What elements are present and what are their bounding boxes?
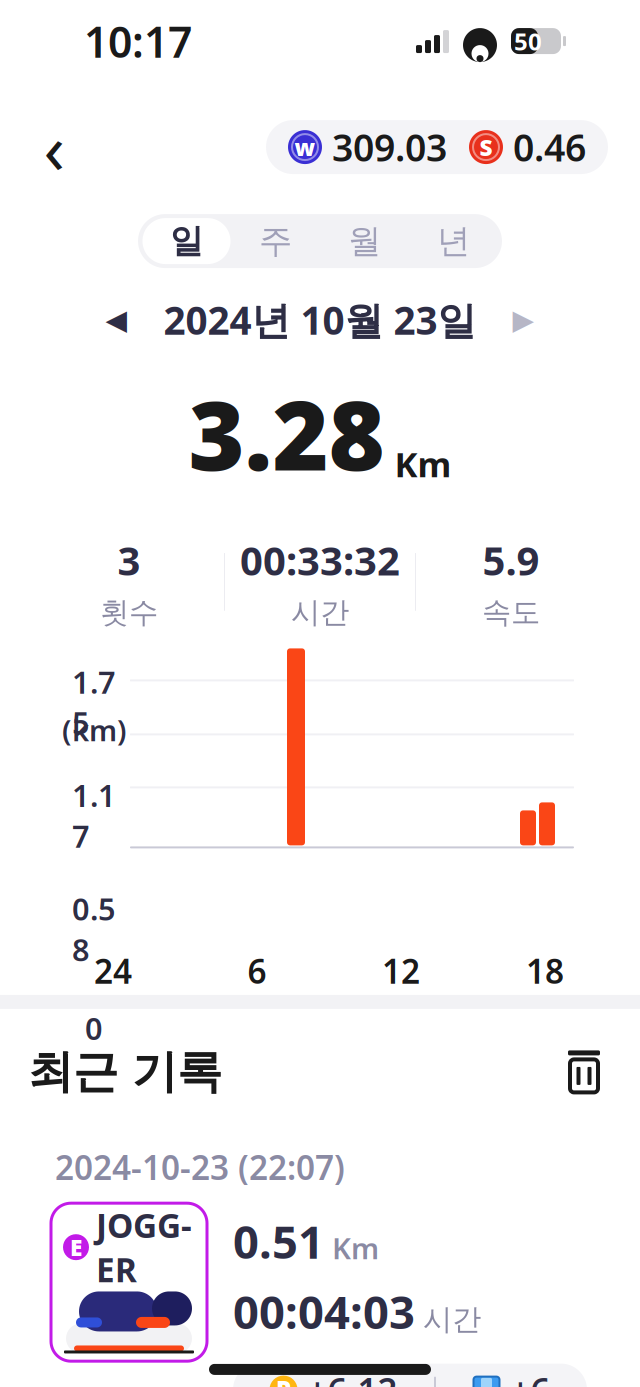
- staticText: 1.17: [72, 775, 116, 856]
- staticText: 0.58: [72, 888, 116, 970]
- staticText: JOGGER: [96, 1203, 192, 1291]
- button[interactable]: Previous day: [93, 297, 139, 343]
- staticText: 주: [259, 221, 292, 261]
- staticText: 2024년 10월 23일: [163, 294, 476, 345]
- button[interactable]: w: [266, 120, 608, 174]
- staticText: 최근 기록: [28, 1044, 222, 1100]
- staticText: ‹: [43, 101, 64, 193]
- staticText: 18: [526, 949, 564, 993]
- button[interactable]: 일: [142, 218, 231, 264]
- staticText: 횟수: [100, 594, 158, 630]
- staticText: 309.03: [332, 122, 447, 172]
- staticText: (km): [62, 710, 127, 749]
- staticText: Km: [332, 1228, 379, 1267]
- staticText: 0.46: [513, 122, 586, 172]
- staticText: 0: [85, 1008, 103, 1048]
- staticText: ◀: [105, 304, 127, 336]
- staticText: 월: [348, 221, 381, 261]
- staticText: 6: [247, 949, 266, 993]
- staticText: E: [70, 1232, 82, 1262]
- staticText: +6.12: [307, 1367, 397, 1387]
- staticText: +6: [510, 1367, 550, 1387]
- button[interactable]: 년: [409, 218, 498, 264]
- staticText: 시간: [423, 1302, 481, 1338]
- button[interactable]: 월: [320, 218, 409, 264]
- button[interactable]: Back: [24, 117, 84, 177]
- staticText: Km: [394, 441, 451, 487]
- staticText: 00:04:03: [233, 1281, 415, 1342]
- staticText: P: [276, 1374, 291, 1387]
- staticText: w: [294, 132, 315, 162]
- staticText: 0.51: [233, 1211, 324, 1271]
- staticText: 00:33:32: [240, 533, 400, 586]
- button[interactable]: Next day: [500, 297, 546, 343]
- staticText: 3: [117, 533, 140, 586]
- staticText: 3.28: [188, 369, 384, 497]
- staticText: 시간: [291, 594, 349, 630]
- staticText: S: [479, 132, 492, 162]
- button[interactable]: 주: [231, 218, 320, 264]
- staticText: 2024-10-23 (22:07): [55, 1145, 345, 1189]
- staticText: 년: [437, 221, 470, 261]
- button[interactable]: 2024-10-23 (22:07): [33, 1127, 607, 1343]
- button[interactable]: Delete records: [556, 1044, 612, 1100]
- staticText: 속도: [482, 594, 540, 630]
- staticText: 일: [170, 221, 203, 261]
- staticText: 24: [94, 949, 132, 993]
- staticText: 50: [514, 25, 542, 57]
- staticText: 5.9: [482, 533, 539, 586]
- staticText: 1.75: [72, 661, 116, 743]
- staticText: 12: [382, 949, 420, 993]
- staticText: 10:17: [84, 13, 192, 69]
- staticText: ▶: [512, 304, 534, 336]
